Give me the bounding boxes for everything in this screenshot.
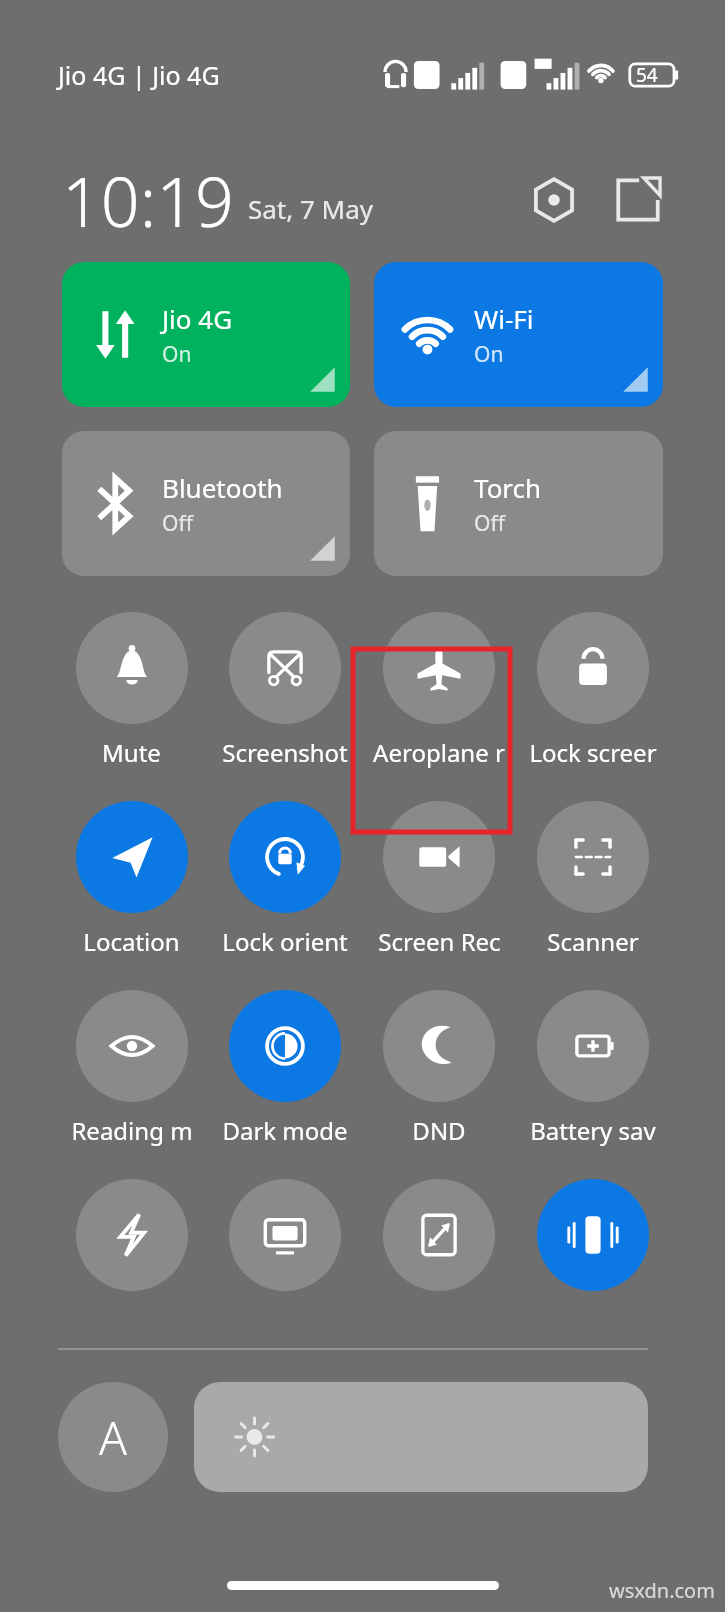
button[interactable]: Battery saver bbox=[516, 990, 670, 1147]
staticText: wsxdn.com bbox=[609, 1577, 715, 1604]
staticText: Jio 4G bbox=[162, 301, 233, 336]
button[interactable]: Resize bbox=[362, 1179, 516, 1291]
button[interactable]: Screen recorder bbox=[362, 801, 516, 958]
staticText: Sat, 7 May bbox=[248, 191, 374, 226]
button[interactable]: Mute bbox=[55, 612, 208, 769]
button[interactable]: Reading mode bbox=[55, 990, 208, 1147]
staticText: Lock orient bbox=[222, 925, 348, 958]
button[interactable]: Cast screen bbox=[208, 1179, 362, 1291]
staticText: Aeroplane r bbox=[373, 736, 505, 769]
staticText: Mute bbox=[102, 736, 161, 769]
staticText: Jio 4G | Jio 4G bbox=[58, 58, 220, 92]
staticText: Off bbox=[162, 509, 193, 538]
button[interactable]: Auto brightness bbox=[58, 1382, 168, 1492]
staticText: Screen Rec bbox=[378, 925, 501, 958]
button[interactable]: Bluetooth bbox=[62, 431, 350, 576]
staticText: Wi-Fi bbox=[474, 301, 534, 336]
staticText: Bluetooth bbox=[162, 470, 283, 505]
staticText: DND bbox=[412, 1114, 466, 1147]
staticText: A bbox=[99, 1406, 127, 1469]
staticText: 10:19 bbox=[62, 154, 234, 247]
button[interactable]: Wi-Fi bbox=[374, 262, 663, 407]
button[interactable]: Brightness bbox=[194, 1382, 648, 1492]
button[interactable]: Jio 4G bbox=[62, 262, 350, 407]
staticText: Dark mode bbox=[222, 1114, 348, 1147]
staticText: Off bbox=[474, 509, 505, 538]
staticText: Location bbox=[83, 925, 180, 958]
button[interactable]: Lock orientation bbox=[208, 801, 362, 958]
staticText: Battery sav bbox=[530, 1114, 656, 1147]
staticText: Lock screer bbox=[529, 736, 657, 769]
staticText: Torch bbox=[474, 470, 542, 505]
staticText: 54 bbox=[636, 62, 658, 88]
button[interactable]: Power bbox=[55, 1179, 208, 1291]
button[interactable]: Edit bbox=[609, 171, 667, 229]
staticText: On bbox=[474, 340, 504, 369]
button[interactable]: Aeroplane mode bbox=[362, 612, 516, 769]
staticText: Reading m bbox=[71, 1114, 193, 1147]
button[interactable]: Dark mode bbox=[208, 990, 362, 1147]
button[interactable]: Vibrate bbox=[516, 1179, 670, 1291]
button[interactable]: Torch bbox=[374, 431, 663, 576]
button[interactable]: Screenshot bbox=[208, 612, 362, 769]
button[interactable]: Do not disturb bbox=[362, 990, 516, 1147]
button[interactable]: Location bbox=[55, 801, 208, 958]
button[interactable]: Settings bbox=[525, 171, 583, 229]
button[interactable]: Lock screen bbox=[516, 612, 670, 769]
staticText: Screenshot bbox=[222, 736, 348, 769]
button[interactable]: Scanner bbox=[516, 801, 670, 958]
staticText: Scanner bbox=[547, 925, 639, 958]
staticText: On bbox=[162, 340, 192, 369]
